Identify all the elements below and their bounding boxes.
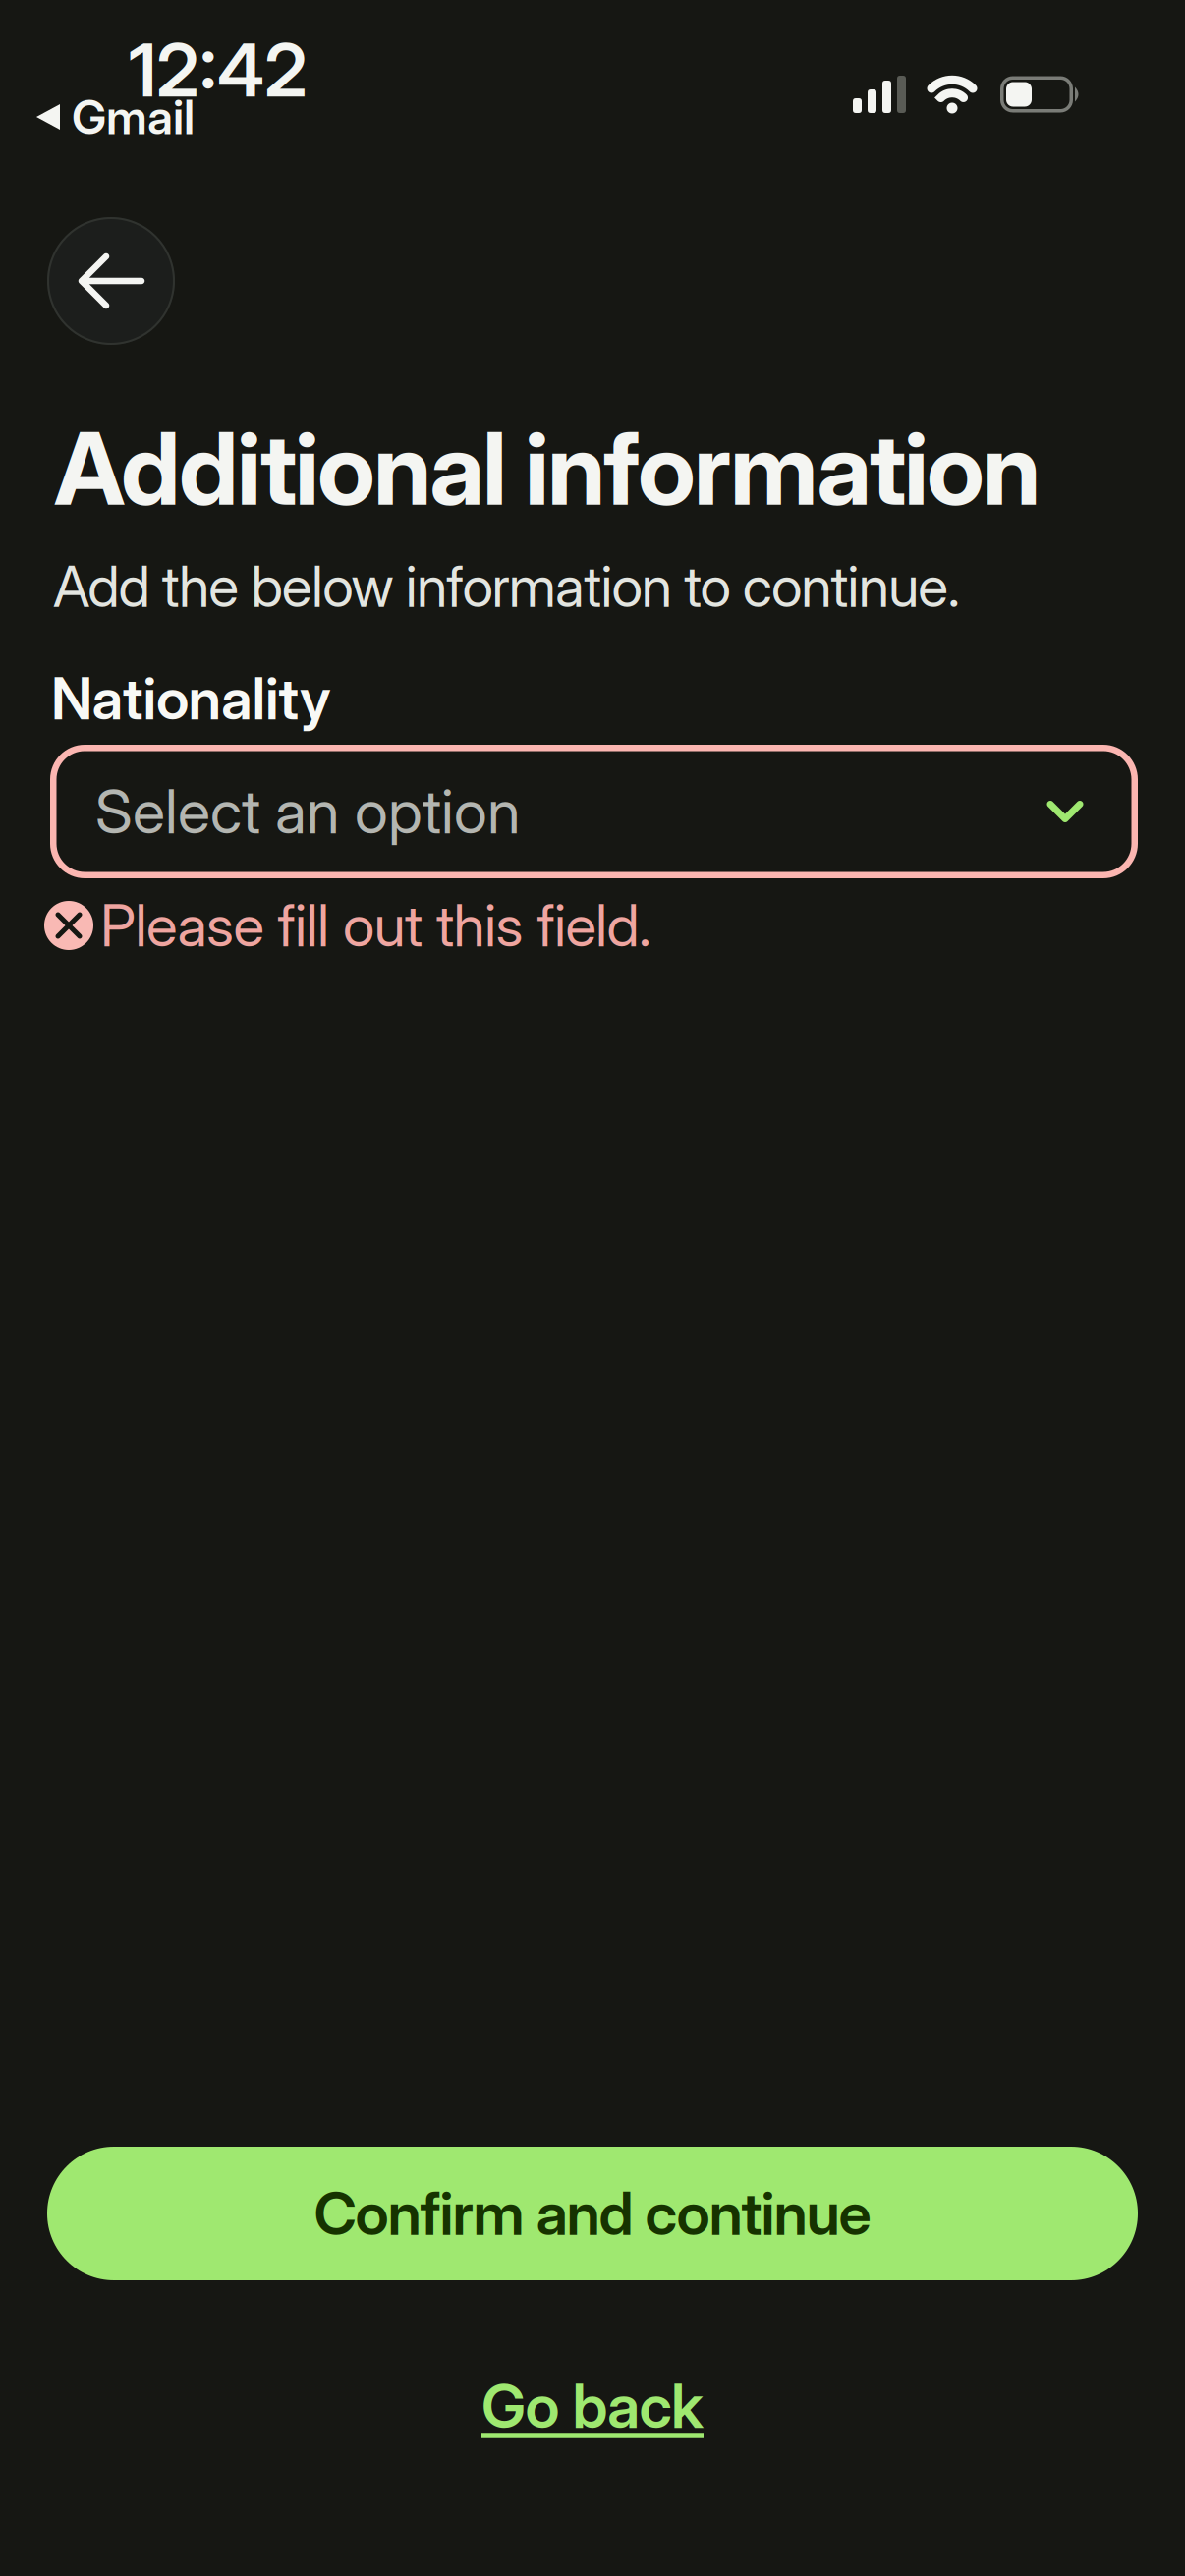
staticText: Select an option [95, 775, 521, 848]
staticText: 12:42 [129, 25, 308, 114]
button[interactable]: Go back [481, 2370, 704, 2442]
staticText: Add the below information to continue. [53, 552, 960, 621]
staticText: Please fill out this field. [100, 891, 651, 960]
button[interactable]: Select an option [50, 745, 1138, 878]
staticText: Gmail [72, 88, 195, 146]
staticText: Confirm and continue [314, 2178, 871, 2249]
button[interactable]: Back [47, 217, 175, 345]
button[interactable]: Confirm and continue [47, 2147, 1138, 2280]
staticText: Go back [481, 2370, 704, 2442]
staticText: Additional information [54, 408, 1041, 529]
staticText: Nationality [51, 664, 331, 733]
